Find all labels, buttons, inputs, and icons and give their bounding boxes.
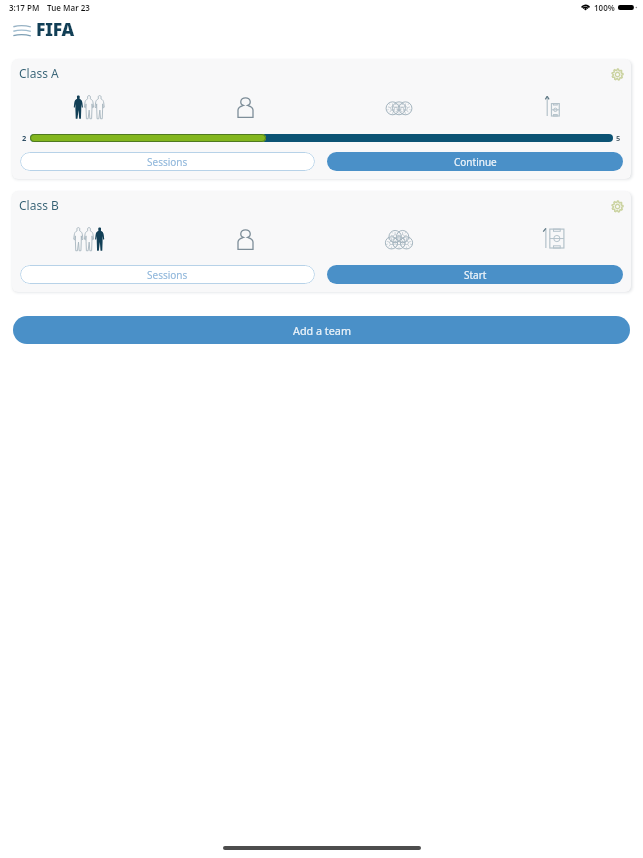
button[interactable]: Add a team [13, 316, 630, 344]
staticText: FIFA [36, 17, 75, 41]
staticText: Class B [19, 197, 59, 213]
button[interactable]: Settings [608, 64, 626, 82]
button[interactable]: Sessions [20, 152, 315, 171]
button[interactable]: Start [327, 265, 623, 284]
button[interactable]: Sessions [20, 265, 315, 284]
staticText: Continue [454, 155, 497, 169]
staticText: Sessions [147, 268, 188, 282]
staticText: Class A [19, 65, 59, 81]
staticText: 5 [616, 133, 621, 143]
staticText: 3:17 PM [9, 2, 40, 13]
staticText: 2 [22, 133, 27, 143]
staticText: Sessions [147, 155, 188, 169]
staticText: Add a team [293, 323, 351, 338]
button[interactable]: Settings [608, 196, 626, 214]
staticText: 100% [594, 2, 615, 13]
staticText: Tue Mar 23 [47, 2, 90, 13]
staticText: Start [464, 268, 487, 282]
button[interactable]: Continue [327, 152, 623, 171]
